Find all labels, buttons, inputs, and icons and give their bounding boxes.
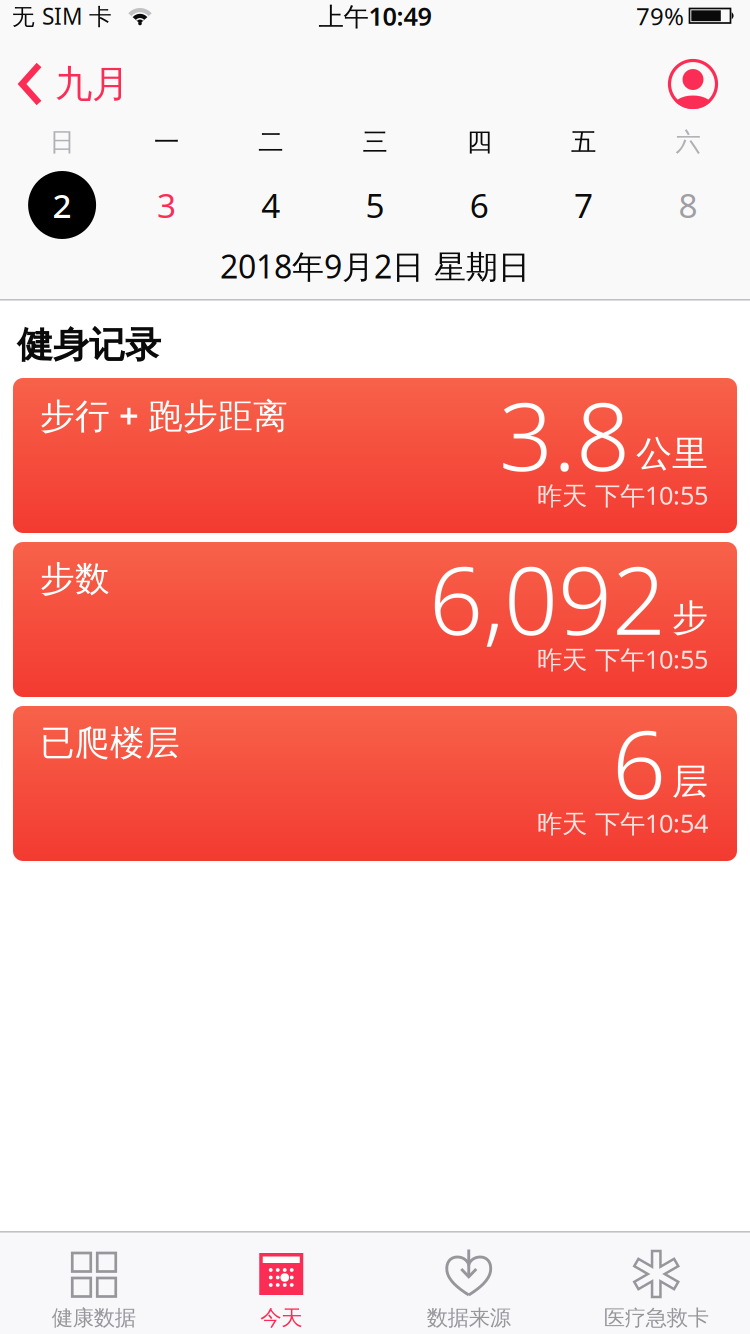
staticText: 九月 — [55, 61, 129, 107]
staticText: 无 SIM 卡 — [12, 1, 112, 31]
staticText: 4 — [261, 183, 280, 227]
staticText: 二 — [258, 126, 283, 157]
staticText: 6 — [612, 699, 666, 825]
staticText: 五 — [571, 126, 596, 157]
staticText: 昨天 下午10:55 — [537, 478, 708, 512]
button[interactable]: 8 — [648, 170, 728, 240]
staticText: 步数 — [40, 558, 110, 600]
button[interactable]: 已爬楼层 — [13, 706, 737, 861]
staticText: 公里 — [636, 432, 708, 476]
button[interactable]: 数据来源 — [375, 1232, 562, 1334]
staticText: 2018年9月2日 星期日 — [220, 245, 530, 287]
staticText: 今天 — [260, 1305, 302, 1331]
staticText: 健康数据 — [52, 1305, 136, 1331]
staticText: 步行 + 跑步距离 — [40, 392, 288, 438]
staticText: 6,092 — [429, 535, 666, 661]
button[interactable]: 步行 + 跑步距离 — [13, 378, 737, 533]
staticText: 六 — [675, 126, 700, 157]
button[interactable]: 医疗急救卡 — [562, 1232, 750, 1334]
staticText: 健身记录 — [17, 323, 161, 367]
button[interactable]: 7 — [544, 170, 624, 240]
button[interactable]: 2 — [28, 171, 96, 239]
staticText: 一 — [154, 126, 179, 157]
staticText: 7 — [574, 183, 593, 227]
button[interactable]: 6 — [439, 170, 519, 240]
staticText: 已爬楼层 — [40, 722, 180, 764]
staticText: 昨天 下午10:55 — [537, 642, 708, 676]
staticText: 层 — [672, 760, 708, 804]
staticText: 8 — [678, 183, 697, 227]
staticText: 四 — [467, 126, 492, 157]
button[interactable]: 3 — [126, 170, 206, 240]
staticText: 2 — [53, 183, 72, 227]
staticText: 数据来源 — [427, 1305, 511, 1331]
staticText: 5 — [365, 183, 384, 227]
staticText: 三 — [362, 126, 387, 157]
button[interactable]: 今天 — [187, 1232, 375, 1334]
staticText: 79% — [636, 0, 684, 32]
staticText: 日 — [50, 126, 75, 157]
button[interactable]: 个人资料 — [668, 59, 718, 109]
staticText: 上午10:49 — [318, 0, 431, 33]
staticText: 医疗急救卡 — [604, 1305, 709, 1331]
button[interactable]: 步数 — [13, 542, 737, 697]
button[interactable]: 健康数据 — [0, 1232, 187, 1334]
staticText: 3.8 — [499, 371, 630, 497]
staticText: 昨天 下午10:54 — [537, 806, 708, 840]
staticText: 6 — [470, 183, 489, 227]
staticText: 3 — [157, 183, 176, 227]
button[interactable]: 5 — [335, 170, 415, 240]
button[interactable]: 4 — [231, 170, 311, 240]
button[interactable]: 九月 — [18, 61, 238, 107]
staticText: 步 — [672, 596, 708, 640]
